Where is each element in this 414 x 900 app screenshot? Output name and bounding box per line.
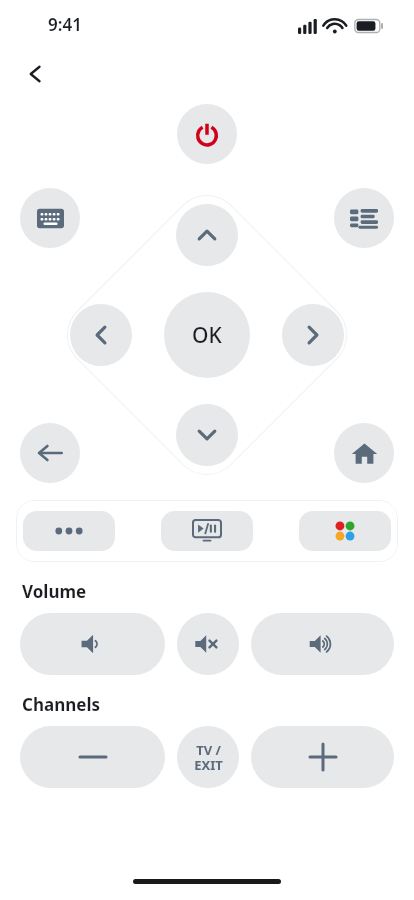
- button[interactable]: Right: [282, 304, 344, 366]
- button[interactable]: Keyboard: [20, 188, 80, 248]
- button[interactable]: More options: [23, 511, 115, 551]
- button[interactable]: Back: [20, 423, 80, 483]
- button[interactable]: Power: [177, 104, 237, 164]
- button[interactable]: Up: [176, 204, 238, 266]
- button[interactable]: Left: [70, 304, 132, 366]
- button[interactable]: Down: [176, 404, 238, 466]
- button[interactable]: Channel down: [20, 726, 165, 788]
- staticText: OK: [192, 321, 222, 350]
- button[interactable]: Volume up: [251, 613, 394, 675]
- button[interactable]: Play pause: [161, 511, 253, 551]
- staticText: 9:41: [48, 13, 82, 36]
- button[interactable]: OK: [164, 292, 250, 378]
- staticText: Channels: [22, 693, 100, 716]
- staticText: TV / EXIT: [194, 741, 223, 774]
- button[interactable]: Volume down: [20, 613, 165, 675]
- button[interactable]: Home: [334, 423, 394, 483]
- button[interactable]: TV / EXIT: [177, 726, 239, 788]
- button[interactable]: Guide: [334, 188, 394, 248]
- staticText: Volume: [22, 580, 87, 603]
- button[interactable]: Back: [14, 52, 58, 96]
- button[interactable]: Color buttons: [299, 511, 391, 551]
- button[interactable]: Channel up: [251, 726, 394, 788]
- button[interactable]: Mute: [177, 613, 239, 675]
